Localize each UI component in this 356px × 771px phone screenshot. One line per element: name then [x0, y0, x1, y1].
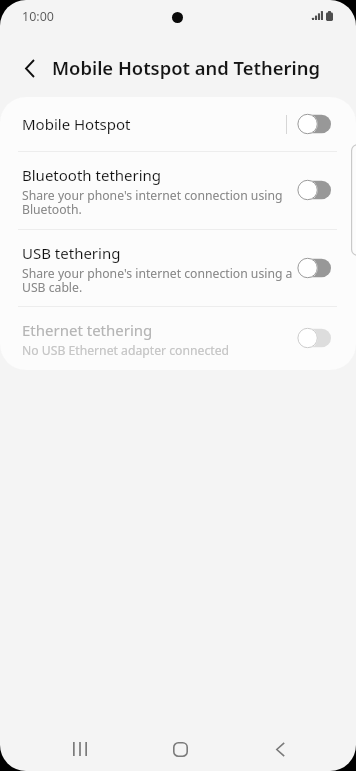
button[interactable]: Toggle — [298, 328, 331, 348]
staticText: Bluetooth tethering — [22, 165, 162, 185]
button[interactable]: Bluetooth tethering — [0, 151, 356, 229]
button[interactable]: Toggle — [298, 114, 331, 134]
button[interactable]: USB tethering — [0, 229, 356, 306]
button[interactable]: Home — [152, 729, 208, 769]
staticText: Share your phone's internet connection u… — [22, 187, 297, 218]
button[interactable]: Toggle — [298, 258, 331, 278]
button[interactable]: Navigate up — [12, 50, 48, 86]
button[interactable]: Toggle — [298, 180, 331, 200]
staticText: 10:00 — [22, 8, 54, 25]
button[interactable]: Mobile Hotspot — [0, 97, 356, 151]
staticText: Ethernet tethering — [22, 320, 153, 340]
button[interactable]: Ethernet tethering — [0, 306, 356, 370]
staticText: No USB Ethernet adapter connected — [22, 342, 230, 359]
staticText: USB tethering — [22, 243, 121, 263]
staticText: Share your phone's internet connection u… — [22, 265, 297, 296]
button[interactable]: Back — [252, 729, 308, 769]
button[interactable]: Recent apps — [52, 729, 108, 769]
staticText: Mobile Hotspot and Tethering — [52, 55, 320, 80]
staticText: Mobile Hotspot — [22, 114, 286, 134]
